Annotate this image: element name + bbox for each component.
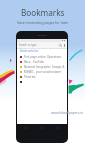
button[interactable] <box>17 79 67 84</box>
button[interactable]: National Geographic: Images & Animals, e… <box>17 64 67 69</box>
staticText: First page online: Operations with user … <box>24 55 67 59</box>
staticText: Bookmarks bar <box>20 49 39 53</box>
button[interactable]: Pinterest <box>17 74 67 79</box>
button[interactable]: Basic - YouTube <box>17 59 67 64</box>
button[interactable]: First page online: Operations with user … <box>17 54 67 59</box>
staticText: www.hdwallpapers.in <box>51 111 84 115</box>
staticText: MSNBC - your social browser <box>24 70 62 74</box>
staticText: Pinterest <box>24 75 36 79</box>
staticText: Search or type <box>19 43 37 47</box>
staticText: National Geographic: Images & Animals, e… <box>24 65 67 69</box>
staticText: Bookmarks <box>21 7 65 18</box>
staticText: Save interesting pages for later <box>17 20 69 25</box>
staticText: Basic - YouTube <box>24 60 45 64</box>
button[interactable]: MSNBC - your social browser <box>17 69 67 74</box>
